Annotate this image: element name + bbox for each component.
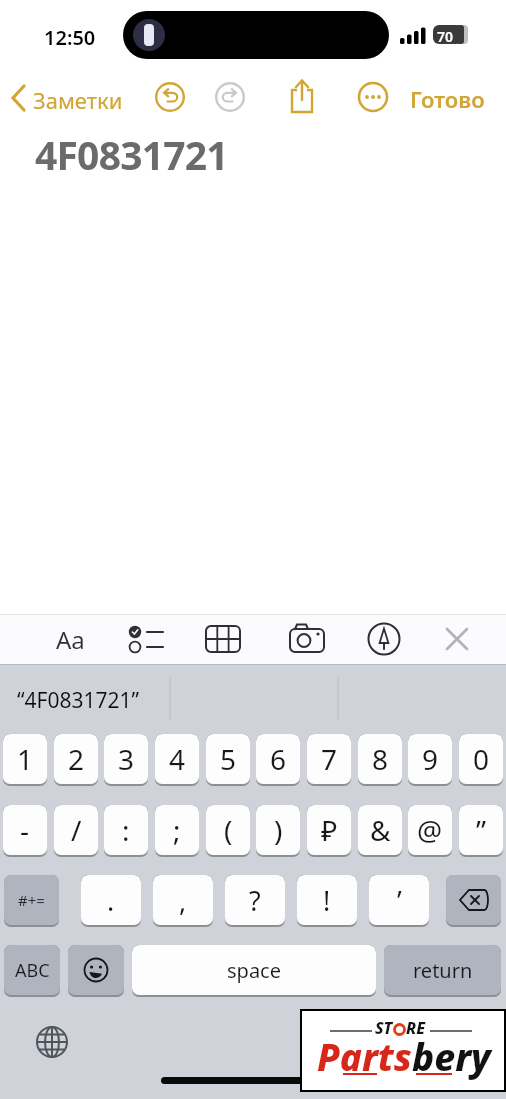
staticText: RE: [406, 1017, 425, 1039]
button[interactable]: #+=: [4, 875, 59, 927]
button[interactable]: Готово: [410, 84, 485, 114]
button[interactable]: [154, 81, 186, 113]
staticText: !: [323, 882, 331, 919]
staticText: ₽: [321, 811, 338, 849]
button[interactable]: space: [132, 945, 376, 997]
staticText: Parts: [317, 1031, 412, 1081]
button[interactable]: Заметки: [8, 80, 128, 116]
staticText: 7: [321, 740, 338, 778]
button[interactable]: [68, 945, 124, 997]
button[interactable]: [214, 81, 246, 113]
button[interactable]: 4: [155, 734, 199, 786]
staticText: ”: [476, 811, 487, 849]
staticText: 8: [372, 740, 389, 778]
staticText: :: [122, 811, 130, 849]
staticText: .: [107, 882, 115, 919]
button[interactable]: 3: [104, 734, 148, 786]
button[interactable]: [127, 625, 165, 653]
button[interactable]: [366, 621, 402, 657]
button[interactable]: -: [3, 805, 47, 857]
staticText: /: [71, 811, 82, 849]
staticText: ): [274, 811, 283, 849]
button[interactable]: ;: [155, 805, 199, 857]
button[interactable]: [289, 79, 315, 115]
staticText: -: [20, 811, 30, 849]
button[interactable]: [446, 875, 501, 927]
button[interactable]: .: [81, 875, 141, 927]
button[interactable]: 5: [206, 734, 250, 786]
button[interactable]: 6: [256, 734, 300, 786]
staticText: ,: [179, 882, 187, 919]
staticText: @: [417, 811, 443, 849]
button[interactable]: 2: [54, 734, 98, 786]
button[interactable]: ”: [459, 805, 503, 857]
staticText: 9: [422, 740, 439, 778]
button[interactable]: Aa: [50, 622, 90, 656]
button[interactable]: [289, 623, 325, 653]
staticText: &: [370, 811, 391, 849]
button[interactable]: /: [54, 805, 98, 857]
staticText: Готово: [410, 84, 485, 114]
staticText: 70: [437, 27, 454, 46]
staticText: (: [224, 811, 233, 849]
button[interactable]: “4F0831721”: [17, 686, 140, 715]
button[interactable]: &: [358, 805, 402, 857]
button[interactable]: 0: [459, 734, 503, 786]
staticText: ;: [173, 811, 181, 849]
staticText: 4: [169, 740, 186, 778]
staticText: 1: [17, 740, 34, 778]
staticText: 5: [220, 740, 237, 778]
button[interactable]: [205, 625, 241, 653]
staticText: space: [227, 957, 281, 984]
staticText: 3: [118, 740, 135, 778]
button[interactable]: (: [206, 805, 250, 857]
staticText: ST: [375, 1017, 393, 1039]
staticText: return: [413, 957, 473, 984]
staticText: “4F0831721”: [17, 686, 140, 715]
button[interactable]: :: [104, 805, 148, 857]
button[interactable]: 9: [408, 734, 452, 786]
button[interactable]: return: [384, 945, 501, 997]
staticText: Aa: [56, 623, 85, 656]
staticText: 4F0831721: [35, 128, 228, 181]
staticText: ABC: [15, 958, 50, 983]
staticText: 6: [270, 740, 287, 778]
button[interactable]: @: [408, 805, 452, 857]
button[interactable]: 7: [307, 734, 351, 786]
staticText: Заметки: [33, 85, 123, 115]
button[interactable]: 1: [3, 734, 47, 786]
button[interactable]: !: [297, 875, 357, 927]
button[interactable]: [444, 626, 470, 652]
button[interactable]: ABC: [4, 945, 60, 997]
button[interactable]: [34, 1024, 70, 1060]
button[interactable]: ₽: [307, 805, 351, 857]
staticText: 12:50: [44, 24, 96, 51]
button[interactable]: 8: [358, 734, 402, 786]
staticText: bery: [412, 1031, 491, 1081]
staticText: 0: [473, 740, 490, 778]
button[interactable]: ): [256, 805, 300, 857]
staticText: #+=: [18, 890, 45, 910]
button[interactable]: [357, 81, 389, 113]
button[interactable]: ,: [153, 875, 213, 927]
staticText: ?: [249, 882, 261, 919]
button[interactable]: ?: [225, 875, 285, 927]
staticText: 2: [68, 740, 85, 778]
staticText: ’: [397, 882, 402, 919]
button[interactable]: ’: [369, 875, 429, 927]
